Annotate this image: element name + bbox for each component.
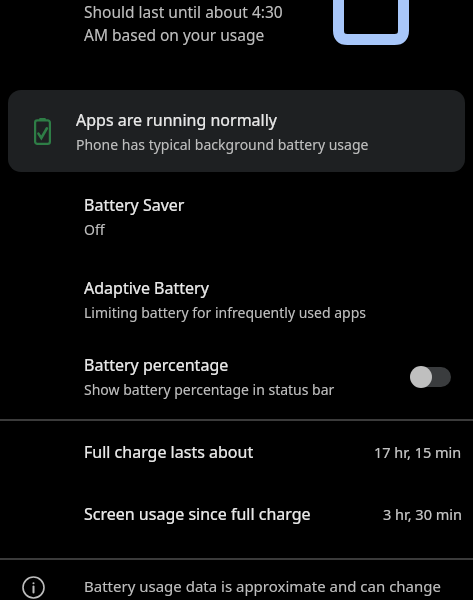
other: Information (22, 576, 45, 599)
button[interactable]: Screen usage since full charge (0, 483, 473, 545)
staticText: Phone has typical background battery usa… (76, 135, 369, 154)
staticText: Full charge lasts about (84, 441, 374, 463)
staticText: Off (84, 220, 105, 239)
staticText: Limiting battery for infrequently used a… (84, 303, 366, 322)
button[interactable]: Apps are running normally (8, 90, 465, 172)
button[interactable]: Battery percentage (0, 338, 473, 415)
button[interactable]: Battery percentage toggle (409, 362, 461, 392)
staticText: Should last until about 4:30 (84, 1, 283, 22)
staticText: Battery percentage (84, 354, 229, 376)
staticText: Screen usage since full charge (84, 503, 383, 525)
staticText: Show battery percentage in status bar (84, 380, 335, 399)
staticText: AM based on your usage (84, 24, 265, 45)
staticText: 3 hr, 30 min (383, 504, 462, 524)
button[interactable]: Full charge lasts about (0, 421, 473, 483)
staticText: Battery Saver (84, 194, 185, 216)
staticText: Adaptive Battery (84, 277, 209, 299)
staticText: 17 hr, 15 min (374, 442, 462, 462)
staticText: Apps are running normally (76, 109, 277, 131)
button[interactable]: Battery Saver (0, 172, 473, 261)
button[interactable]: Adaptive Battery (0, 261, 473, 338)
staticText: Battery usage data is approximate and ca… (84, 576, 459, 600)
